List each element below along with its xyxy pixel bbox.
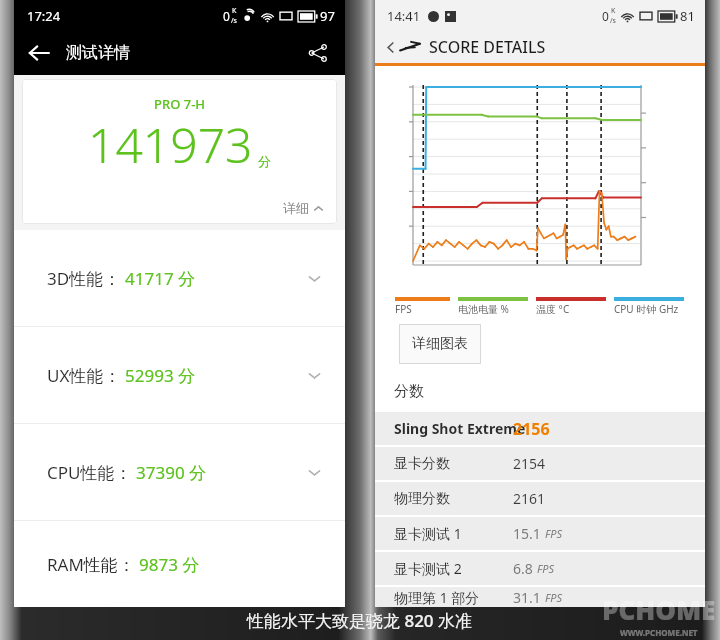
button[interactable]: RAM性能： [14, 521, 345, 607]
button[interactable]: 显卡测试 1 [375, 517, 705, 550]
staticText: 0 [223, 8, 230, 24]
staticText: 15.1 [513, 524, 541, 543]
staticText: SCORE DETAILS [429, 36, 546, 58]
staticText: 性能水平大致是骁龙 820 水准 [247, 609, 473, 632]
staticText: 显卡测试 1 [394, 524, 462, 543]
staticText: 电池电量 % [458, 302, 509, 316]
staticText: 详细 [283, 200, 309, 216]
staticText: 3D性能： [47, 267, 121, 290]
staticText: UX性能： [47, 364, 121, 387]
button[interactable]: 物理第 1 部分 [375, 587, 705, 607]
staticText: 97 [320, 7, 335, 25]
button[interactable]: Share [299, 34, 337, 72]
staticText: K [611, 6, 616, 16]
staticText: PCHOME [602, 592, 716, 627]
button[interactable]: Back to score details [375, 31, 705, 63]
staticText: CPU性能： [47, 461, 132, 484]
staticText: 31.1 [513, 588, 541, 607]
button[interactable]: UX性能： [14, 327, 345, 423]
staticText: PRO 7-H [154, 95, 206, 113]
staticText: /s [231, 16, 237, 26]
staticText: Sling Shot Extreme [394, 419, 526, 438]
staticText: 52993 分 [125, 364, 196, 387]
staticText: 分 [258, 153, 271, 169]
staticText: 6.8 [513, 559, 533, 578]
staticText: 37390 分 [136, 461, 207, 484]
staticText: 2156 [513, 418, 550, 440]
staticText: 41717 分 [125, 267, 196, 290]
staticText: CPU 时钟 GHz [614, 302, 679, 316]
staticText: 141973 [88, 112, 253, 177]
staticText: FPS [395, 302, 412, 316]
staticText: FPS [545, 526, 563, 541]
button[interactable]: 详细 [283, 200, 325, 216]
staticText: 温度 °C [536, 302, 570, 316]
button[interactable]: 显卡分数 [375, 447, 705, 480]
staticText: WWW.PCHOME.NET [620, 627, 698, 638]
button[interactable]: 详细图表 [399, 324, 481, 364]
staticText: 详细图表 [412, 335, 468, 353]
staticText: 9873 分 [139, 553, 200, 576]
staticText: 81 [680, 7, 695, 25]
staticText: 显卡测试 2 [394, 559, 462, 578]
staticText: 14:41 [387, 7, 421, 25]
button[interactable]: CPU性能： [14, 424, 345, 520]
button[interactable]: PRO 7-H [22, 79, 337, 224]
staticText: FPS [537, 561, 555, 576]
staticText: 2161 [513, 489, 546, 508]
button[interactable]: Sling Shot Extreme [375, 412, 705, 445]
staticText: 0 [602, 8, 609, 24]
staticText: 测试详情 [66, 43, 130, 63]
staticText: 显卡分数 [394, 455, 450, 473]
staticText: K [232, 6, 237, 16]
staticText: 2154 [513, 454, 546, 473]
staticText: RAM性能： [47, 553, 135, 576]
staticText: FPS [545, 590, 563, 605]
button[interactable]: 显卡测试 2 [375, 552, 705, 585]
button[interactable]: Back [21, 35, 57, 71]
staticText: 物理分数 [394, 490, 450, 508]
button[interactable]: 物理分数 [375, 482, 705, 515]
staticText: /s [610, 16, 616, 26]
staticText: 分数 [394, 382, 424, 401]
staticText: 17:24 [27, 7, 61, 25]
button[interactable]: 3D性能： [14, 230, 345, 326]
staticText: 物理第 1 部分 [394, 588, 480, 607]
